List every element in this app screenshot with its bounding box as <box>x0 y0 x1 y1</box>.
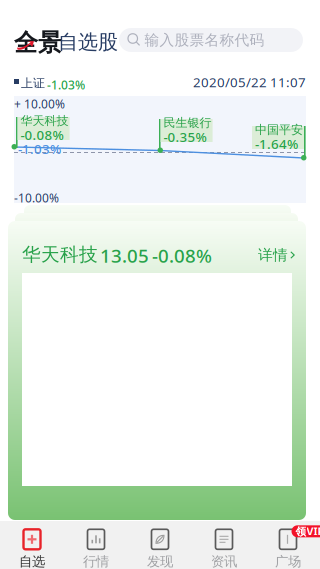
staticText: 行情 <box>83 553 109 569</box>
staticText: -0.35% <box>164 128 207 146</box>
staticText: 发现 <box>147 553 173 569</box>
staticText: -0.08% <box>152 243 212 268</box>
staticText: 上证 <box>21 76 45 91</box>
button[interactable]: 广场 <box>256 521 320 569</box>
staticText: 输入股票名称代码 <box>144 31 264 49</box>
button[interactable]: 全景 <box>14 28 58 52</box>
staticText: 资讯 <box>211 553 237 569</box>
staticText: -10.00% <box>14 190 59 206</box>
staticText: 13.05 <box>100 243 149 268</box>
staticText: 华天科技 <box>21 113 69 128</box>
button[interactable]: 发现 <box>128 521 192 569</box>
staticText: 自选 <box>19 553 45 569</box>
button[interactable]: 行情 <box>64 521 128 569</box>
staticText: -1.64% <box>255 135 298 153</box>
staticText: + 10.00% <box>14 96 65 112</box>
staticText: -1.03% <box>18 140 61 158</box>
staticText: 自选股 <box>58 30 118 54</box>
staticText: 民生银行 <box>164 115 212 130</box>
button[interactable]: 自选 <box>0 521 64 569</box>
staticText: 华天科技 <box>22 243 98 266</box>
button[interactable]: 输入股票名称代码 <box>119 28 303 52</box>
staticText: 全景 <box>14 28 62 57</box>
staticText: 中国平安 <box>255 122 303 137</box>
staticText: -1.03% <box>47 77 85 93</box>
staticText: 详情 <box>258 246 288 264</box>
staticText: 领VIP <box>295 524 320 538</box>
staticText: 广场 <box>275 553 301 569</box>
staticText: 2020/05/22 11:07 <box>193 73 306 91</box>
button[interactable]: 华天科技 <box>8 221 306 520</box>
button[interactable]: 自选股 <box>64 31 112 53</box>
staticText: -0.08% <box>21 126 64 144</box>
button[interactable]: 资讯 <box>192 521 256 569</box>
